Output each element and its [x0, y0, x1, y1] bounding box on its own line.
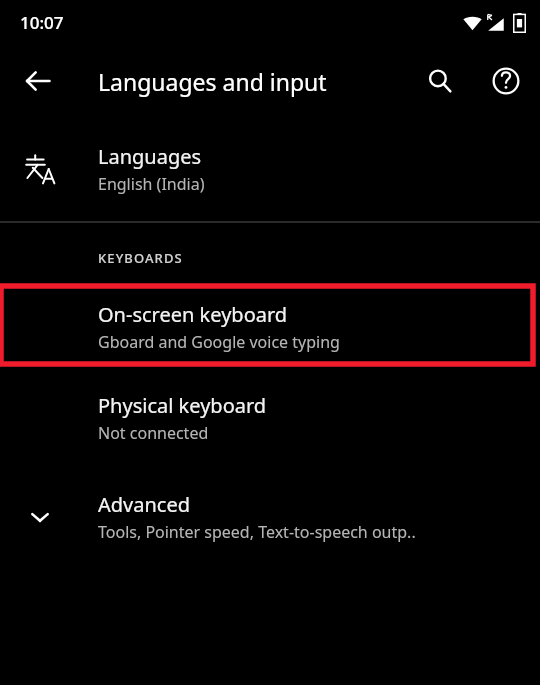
staticText: Physical keyboard [98, 392, 267, 419]
staticText: KEYBOARDS [98, 249, 183, 267]
button[interactable]: On-screen keyboard [0, 285, 540, 369]
staticText: Tools, Pointer speed, Text-to-speech out… [98, 521, 416, 543]
staticText: Not connected [98, 422, 209, 444]
button[interactable]: Languages [0, 117, 540, 221]
staticText: Languages and input [98, 66, 327, 97]
button[interactable]: Search [416, 57, 464, 105]
staticText: Gboard and Google voice typing [98, 331, 340, 353]
button[interactable]: Physical keyboard [0, 369, 540, 467]
button[interactable]: Back [14, 57, 62, 105]
button[interactable]: Advanced [0, 467, 540, 567]
staticText: Advanced [98, 491, 190, 518]
staticText: Languages [98, 143, 202, 170]
staticText: English (India) [98, 173, 205, 195]
button[interactable]: Help [482, 57, 530, 105]
staticText: On-screen keyboard [98, 301, 288, 328]
staticText: 10:07 [20, 11, 64, 34]
